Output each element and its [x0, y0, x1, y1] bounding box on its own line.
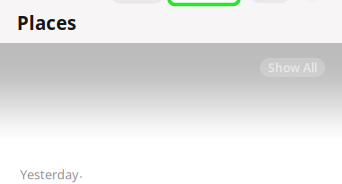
button[interactable]: Show All — [260, 58, 325, 77]
button[interactable]: Filter — [111, 1, 164, 23]
button[interactable]: Selected filter — [169, 0, 239, 24]
button[interactable]: Filter — [250, 1, 290, 23]
staticText: Show All — [268, 59, 317, 76]
staticText: Places — [17, 10, 76, 35]
staticText: Yesterday — [20, 166, 78, 183]
